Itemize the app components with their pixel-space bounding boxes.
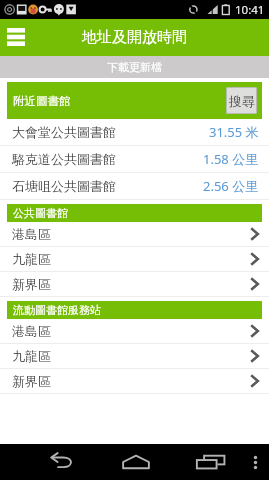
button[interactable]: More options (243, 444, 267, 480)
button[interactable]: 九龍區 (0, 344, 269, 369)
staticText: 九龍區 (12, 348, 51, 364)
staticText: 駱克道公共圖書館 (12, 151, 116, 167)
staticText: 附近圖書館 (13, 94, 71, 108)
button[interactable]: 下載更新檔 (0, 56, 269, 78)
button[interactable]: 大會堂公共圖書館 (0, 119, 269, 146)
staticText: 10:41 (235, 2, 265, 18)
staticText: 搜尋 (229, 93, 255, 109)
staticText: 流動圖書館服務站 (13, 303, 101, 317)
staticText: 九龍區 (12, 251, 51, 267)
button[interactable]: 駱克道公共圖書館 (0, 146, 269, 173)
staticText: 31.55 米 (209, 123, 259, 141)
staticText: 港島區 (12, 323, 51, 339)
button[interactable]: 搜尋 (226, 87, 257, 114)
staticText: 新界區 (12, 276, 51, 292)
button[interactable]: 新界區 (0, 369, 269, 394)
staticText: 港島區 (12, 226, 51, 242)
button[interactable]: Menu (0, 19, 32, 56)
button[interactable]: 九龍區 (0, 247, 269, 272)
staticText: 公共圖書館 (13, 206, 68, 220)
staticText: 石塘咀公共圖書館 (12, 178, 116, 194)
button[interactable]: 港島區 (0, 319, 269, 344)
button[interactable]: Home (111, 444, 160, 480)
staticText: 下載更新檔 (107, 60, 162, 74)
staticText: 地址及開放時間 (82, 28, 187, 47)
staticText: 1.58 公里 (203, 150, 259, 168)
button[interactable]: 港島區 (0, 222, 269, 247)
staticText: 大會堂公共圖書館 (12, 124, 116, 140)
staticText: 新界區 (12, 373, 51, 389)
button[interactable]: Recent apps (186, 444, 235, 480)
button[interactable]: Back (36, 444, 85, 480)
button[interactable]: 石塘咀公共圖書館 (0, 173, 269, 200)
button[interactable]: 新界區 (0, 272, 269, 297)
staticText: 2.56 公里 (203, 177, 259, 195)
